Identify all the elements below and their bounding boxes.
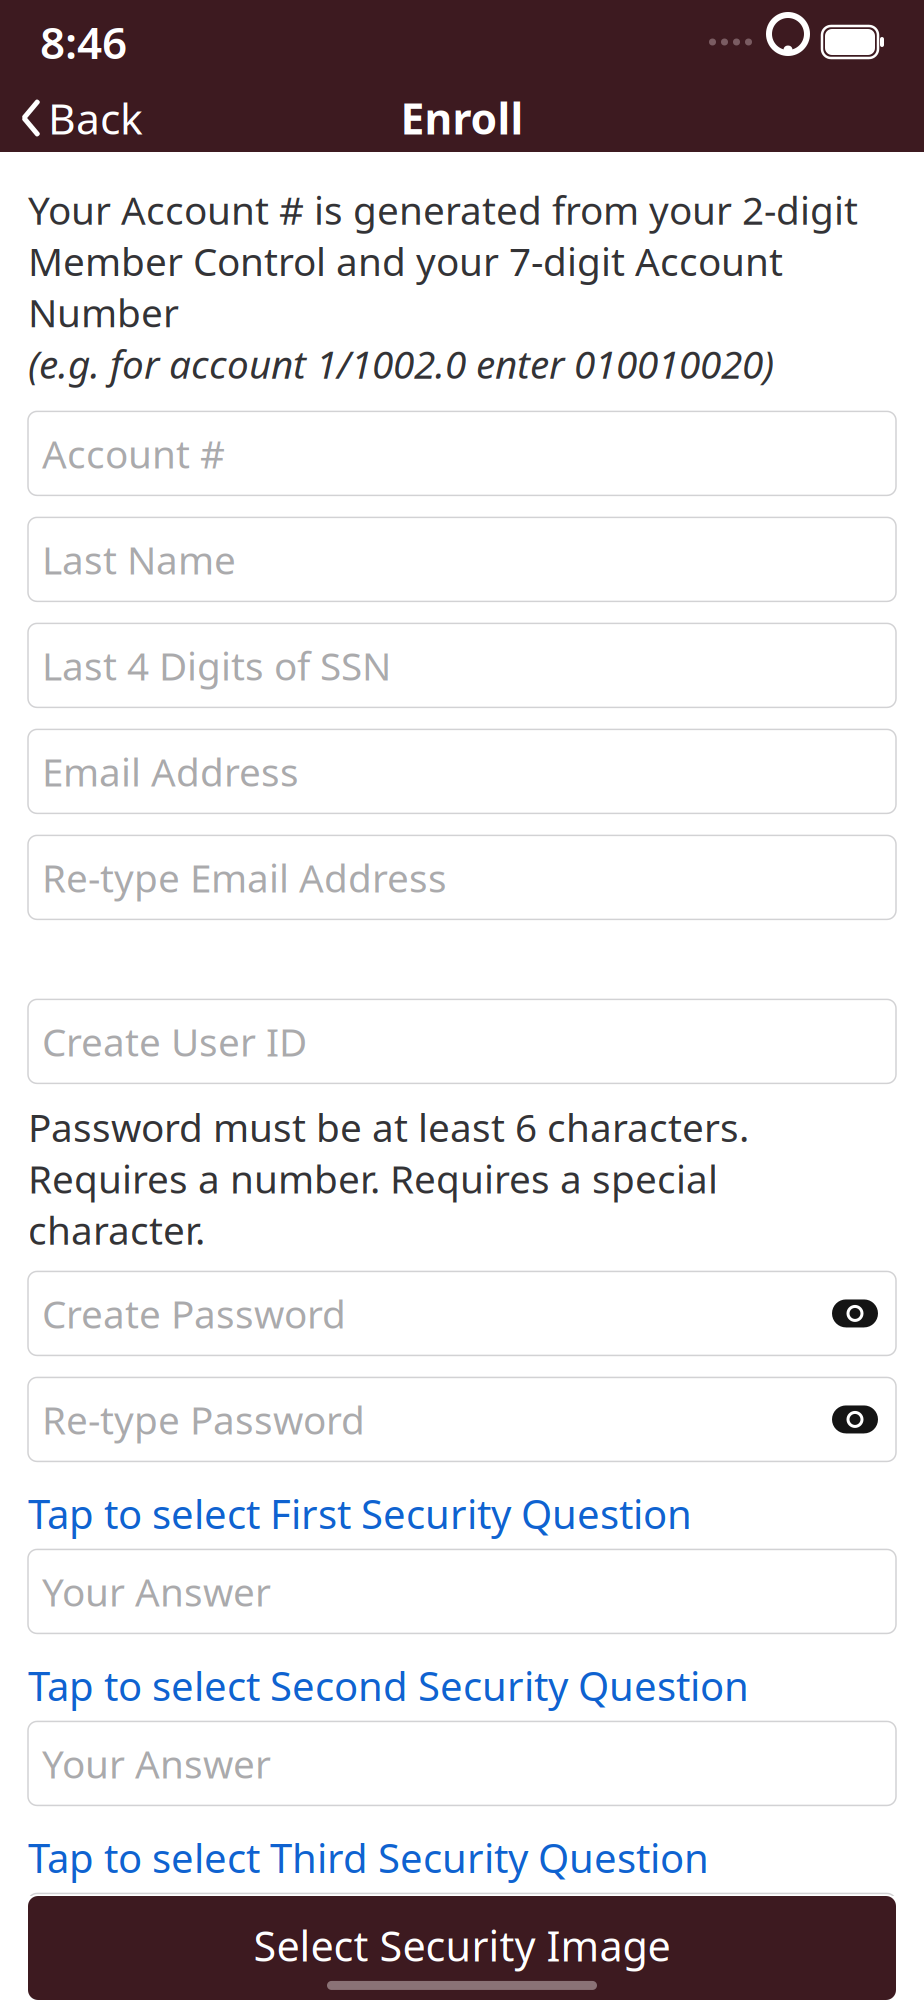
staticText: 8:46 bbox=[40, 13, 127, 71]
staticText: Email Address bbox=[42, 746, 299, 797]
staticText: Back bbox=[48, 90, 143, 146]
staticText: Your Answer bbox=[42, 1566, 271, 1617]
staticText: Tap to select Third Security Question bbox=[28, 1831, 709, 1884]
staticText: Select Security Image bbox=[253, 1918, 670, 1973]
staticText: (e.g. for account 1/1002.0 enter 0100100… bbox=[28, 338, 774, 389]
staticText: Enroll bbox=[400, 90, 523, 146]
staticText: Re-type Password bbox=[42, 1394, 365, 1445]
staticText: Tap to select First Security Question bbox=[28, 1487, 692, 1540]
staticText: Create User ID bbox=[42, 1016, 307, 1067]
staticText: Create Password bbox=[42, 1288, 346, 1339]
staticText: Your Answer bbox=[42, 1738, 271, 1789]
button[interactable]: Tap to select Second Security Question bbox=[28, 1665, 896, 1705]
staticText: Account # bbox=[42, 428, 225, 479]
staticText: Password must be at least 6 characters. … bbox=[28, 1101, 749, 1255]
button[interactable]: Show password bbox=[828, 1392, 882, 1446]
staticText: Your Answer bbox=[42, 1910, 271, 1961]
button[interactable]: Tap to select Third Security Question bbox=[28, 1837, 896, 1877]
button[interactable]: Tap to select First Security Question bbox=[28, 1493, 896, 1533]
button[interactable]: Back bbox=[0, 88, 163, 148]
staticText: Tap to select Second Security Question bbox=[28, 1659, 749, 1712]
staticText: Your Account # is generated from your 2-… bbox=[28, 184, 858, 338]
staticText: Last Name bbox=[42, 534, 236, 585]
staticText: Last 4 Digits of SSN bbox=[42, 640, 391, 691]
button[interactable]: Select Security Image bbox=[28, 1896, 896, 2000]
staticText: Re-type Email Address bbox=[42, 852, 447, 903]
button[interactable]: Show password bbox=[828, 1286, 882, 1340]
